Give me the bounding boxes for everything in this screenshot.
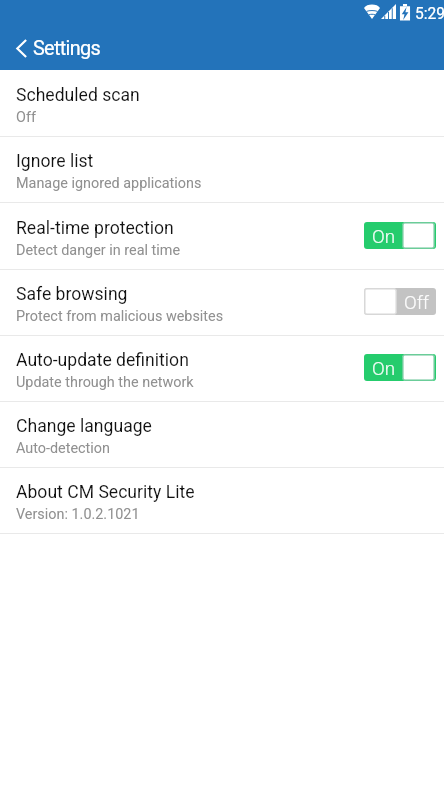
button[interactable]: Auto-update definition [0,336,444,401]
button[interactable]: Real-time protection [0,203,444,269]
staticText: Settings [33,37,101,60]
button[interactable]: Toggle On [364,222,436,249]
staticText: Ignore list [16,151,94,172]
staticText: Real-time protection [16,218,174,239]
staticText: On [364,226,403,248]
button[interactable]: Toggle On [364,354,436,381]
button[interactable]: About CM Security Lite [0,468,444,533]
staticText: Off [16,109,36,126]
staticText: On [364,358,403,380]
staticText: Off [397,292,436,314]
staticText: Detect danger in real time [16,242,181,259]
staticText: Manage ignored applications [16,175,202,192]
staticText: 5:29 [415,5,444,23]
button[interactable]: Toggle Off [364,288,436,315]
staticText: About CM Security Lite [16,482,195,503]
button[interactable]: Scheduled scan [0,70,444,136]
staticText: Update through the network [16,374,194,391]
button[interactable]: Ignore list [0,137,444,202]
staticText: Version: 1.0.2.1021 [16,506,140,523]
button[interactable]: Change language [0,402,444,467]
staticText: Auto-update definition [16,350,189,371]
button[interactable]: Safe browsing [0,270,444,335]
staticText: Protect from malicious websites [16,308,224,325]
staticText: Auto-detection [16,440,110,457]
staticText: Safe browsing [16,284,128,305]
staticText: Change language [16,416,152,437]
button[interactable]: Back [0,27,32,70]
staticText: Scheduled scan [16,85,140,106]
